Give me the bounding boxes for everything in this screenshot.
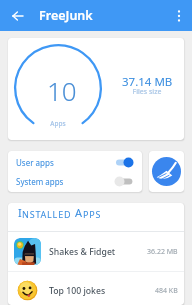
staticText: I [18, 205, 22, 220]
button[interactable]: System apps [8, 175, 142, 188]
button[interactable]: Clean junk files [149, 151, 184, 192]
button[interactable]: Back [7, 5, 29, 27]
staticText: 10 [47, 73, 77, 108]
button[interactable]: Shakes & Fidget [8, 232, 184, 271]
staticText: A [75, 205, 83, 220]
staticText: 37.14 MB [122, 74, 173, 90]
button[interactable]: More options [169, 6, 189, 26]
staticText: System apps [16, 176, 114, 187]
staticText: User apps [16, 157, 114, 168]
staticText: 484 KB [155, 286, 178, 296]
staticText: FreeJunk [39, 7, 93, 24]
button[interactable]: User apps [8, 156, 142, 169]
staticText: 36.22 MB [147, 247, 178, 257]
staticText: PPS [83, 208, 102, 220]
button[interactable]: Top 100 jokes [8, 274, 184, 305]
staticText: Top 100 jokes [49, 285, 155, 297]
staticText: Files size [123, 87, 171, 97]
staticText: Shakes & Fidget [49, 246, 147, 258]
staticText: Apps [43, 119, 73, 128]
staticText: NSTALLED [22, 208, 75, 220]
